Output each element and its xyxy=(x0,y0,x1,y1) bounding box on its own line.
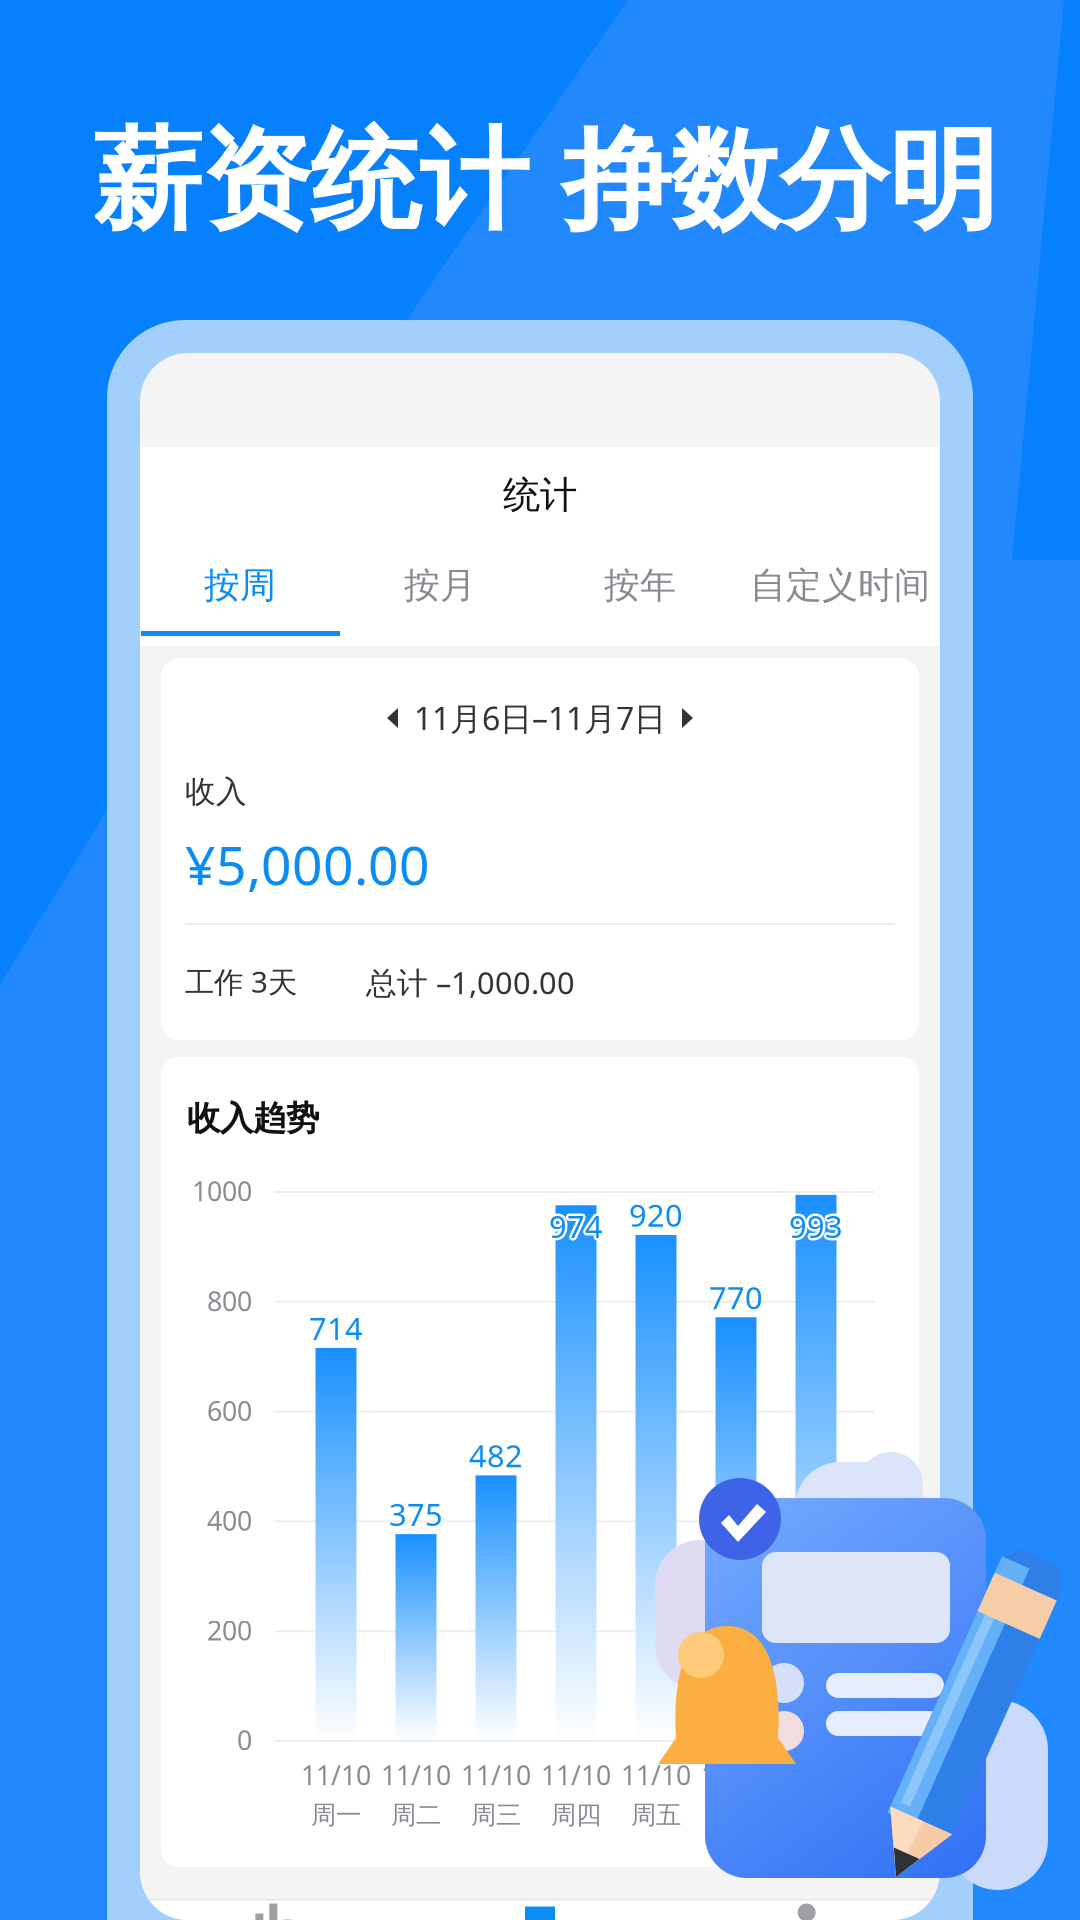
button[interactable]: 自定义时间 xyxy=(740,538,940,633)
staticText: 714 xyxy=(309,1308,363,1348)
staticText: 薪资统计 挣数分明 xyxy=(92,114,997,248)
staticText: 974 xyxy=(551,1207,605,1248)
staticText: 993 xyxy=(791,1204,845,1244)
staticText: 974 xyxy=(551,1206,605,1246)
staticText: 周四 xyxy=(551,1799,601,1830)
staticText: 11/10 xyxy=(621,1757,691,1793)
staticText: 11/10 xyxy=(541,1757,611,1793)
staticText: 974 xyxy=(549,1203,603,1244)
staticText: 993 xyxy=(789,1208,843,1249)
staticText: 11/10 xyxy=(461,1757,531,1793)
staticText: 11月6日–11月7日 xyxy=(414,697,666,739)
staticText: 1000 xyxy=(192,1173,252,1209)
staticText: 993 xyxy=(787,1204,841,1244)
staticText: 974 xyxy=(551,1204,605,1244)
staticText: 周二 xyxy=(391,1799,441,1830)
staticText: 收入趋势 xyxy=(187,1098,319,1139)
staticText: 800 xyxy=(207,1283,252,1318)
staticText: 自定义时间 xyxy=(750,563,930,608)
staticText: 974 xyxy=(547,1204,601,1244)
staticText: 375 xyxy=(389,1494,443,1534)
staticText: 993 xyxy=(789,1203,843,1244)
staticText: 993 xyxy=(787,1207,841,1248)
button[interactable]: 按周 xyxy=(140,538,340,633)
staticText: 920 xyxy=(629,1195,683,1235)
staticText: 0 xyxy=(237,1722,252,1758)
button[interactable]: 统计 xyxy=(407,1901,673,1920)
staticText: 统计 xyxy=(503,472,577,518)
staticText: 工作 3天 xyxy=(185,962,297,1001)
button[interactable]: 首页 xyxy=(140,1901,407,1920)
staticText: 11/10 xyxy=(781,1757,851,1793)
staticText: 993 xyxy=(786,1206,840,1246)
staticText: 周一 xyxy=(311,1799,361,1830)
staticText: 974 xyxy=(547,1207,601,1248)
staticText: 974 xyxy=(549,1206,603,1246)
staticText: 482 xyxy=(469,1435,523,1476)
button[interactable]: 11月6日–11月7日 xyxy=(375,681,705,755)
staticText: 770 xyxy=(709,1277,763,1318)
staticText: 按年 xyxy=(604,563,676,608)
staticText: 11/10 xyxy=(301,1757,371,1793)
staticText: 993 xyxy=(791,1207,845,1248)
staticText: 按周 xyxy=(204,563,276,608)
staticText: 收入 xyxy=(185,773,247,811)
staticText: 周五 xyxy=(631,1799,681,1830)
button[interactable]: 按年 xyxy=(540,538,740,633)
staticText: 974 xyxy=(546,1206,600,1246)
staticText: 993 xyxy=(789,1206,843,1246)
staticText: ¥5,000.00 xyxy=(185,829,430,900)
staticText: 400 xyxy=(207,1503,252,1538)
staticText: 周三 xyxy=(471,1799,521,1830)
staticText: 993 xyxy=(791,1206,845,1246)
staticText: 按月 xyxy=(404,563,476,608)
staticText: 974 xyxy=(549,1208,603,1249)
staticText: 200 xyxy=(207,1612,252,1648)
staticText: 11/10 xyxy=(381,1757,451,1793)
button[interactable]: 按月 xyxy=(340,538,540,633)
staticText: 11/10 xyxy=(701,1757,771,1793)
staticText: 600 xyxy=(207,1393,252,1428)
button[interactable]: 我的 xyxy=(673,1901,940,1920)
staticText: 总计 –1,000.00 xyxy=(366,962,575,1003)
